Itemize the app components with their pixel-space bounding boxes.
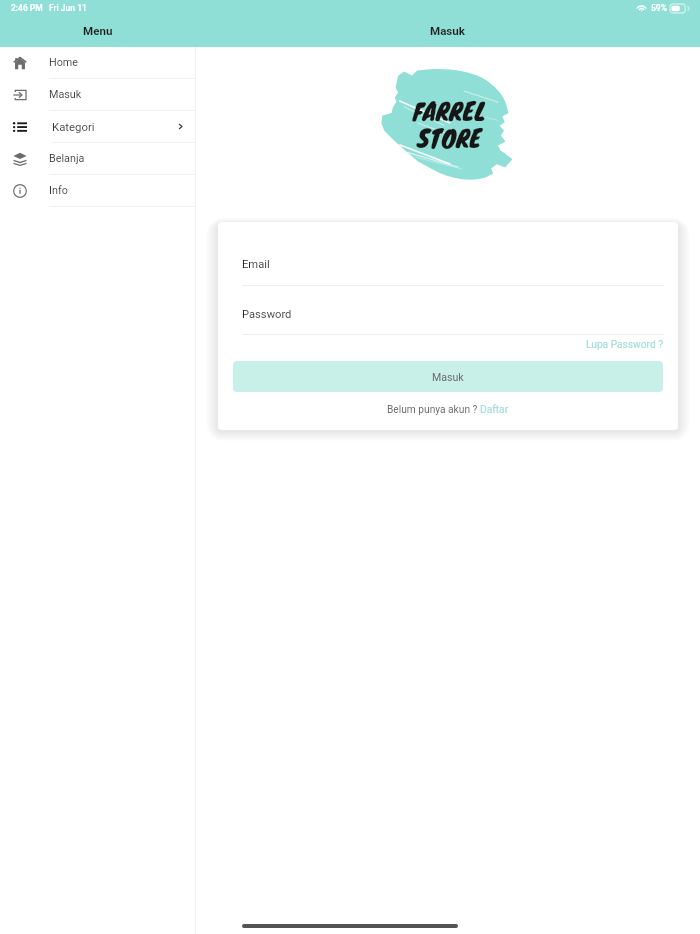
button[interactable]: Email bbox=[242, 253, 664, 286]
other: Wi-Fi bbox=[636, 4, 647, 12]
button[interactable]: Belanja bbox=[0, 143, 195, 175]
button[interactable]: Masuk bbox=[233, 361, 663, 392]
staticText: Fri Jun 11 bbox=[49, 3, 87, 13]
staticText: Belanja bbox=[49, 152, 85, 165]
staticText: FARREL bbox=[413, 93, 486, 129]
other: Battery 59 percent bbox=[670, 4, 688, 13]
button[interactable]: Kategori bbox=[0, 111, 195, 143]
staticText: Info bbox=[49, 184, 68, 197]
staticText: 2:46 PM bbox=[11, 3, 43, 13]
button[interactable]: Home bbox=[0, 47, 195, 79]
staticText: Masuk bbox=[49, 88, 82, 101]
staticText: 59% bbox=[651, 3, 667, 13]
button[interactable]: Password bbox=[242, 303, 664, 335]
button[interactable]: Masuk bbox=[0, 79, 195, 111]
button[interactable]: Info bbox=[0, 175, 195, 207]
staticText: Masuk bbox=[430, 24, 466, 38]
staticText: Menu bbox=[83, 24, 113, 38]
staticText: Password bbox=[242, 308, 292, 321]
staticText: Lupa Password ? bbox=[586, 339, 664, 351]
staticText: Masuk bbox=[432, 371, 464, 383]
staticText: Daftar bbox=[480, 404, 509, 416]
staticText: Email bbox=[242, 258, 270, 271]
staticText: Belum punya akun ? bbox=[387, 404, 480, 416]
staticText: Home bbox=[49, 56, 79, 69]
other: Open Kategori bbox=[176, 122, 185, 131]
staticText: Kategori bbox=[52, 120, 95, 133]
staticText: STORE bbox=[417, 120, 482, 156]
button[interactable]: Daftar bbox=[480, 404, 509, 416]
button[interactable]: Lupa Password ? bbox=[586, 339, 664, 351]
